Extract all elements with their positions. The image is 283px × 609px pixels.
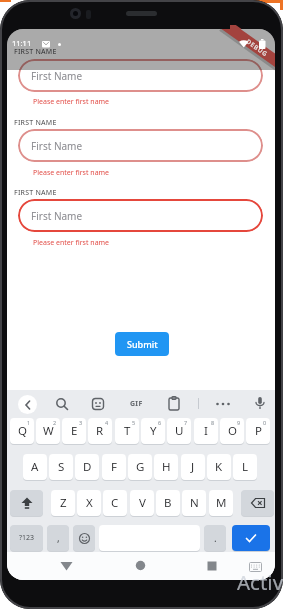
button[interactable] <box>254 396 266 411</box>
staticText: Please enter first name <box>33 97 110 107</box>
staticText: 6 <box>158 419 162 426</box>
staticText: L <box>242 459 249 475</box>
staticText: 0 <box>263 419 267 426</box>
staticText: R <box>96 423 104 439</box>
button[interactable]: Submit <box>115 332 169 356</box>
button[interactable] <box>73 525 95 551</box>
button[interactable]: L <box>233 454 257 480</box>
button[interactable]: I <box>194 418 218 444</box>
button[interactable] <box>207 561 217 571</box>
button[interactable]: E <box>62 418 86 444</box>
button[interactable]: Y <box>141 418 165 444</box>
button[interactable]: S <box>49 454 73 480</box>
staticText: K <box>215 459 223 475</box>
staticText: 4 <box>105 419 109 426</box>
button[interactable]: D <box>75 454 99 480</box>
staticText: I <box>204 423 208 439</box>
button[interactable]: N <box>182 490 206 516</box>
staticText: 5 <box>132 419 136 426</box>
button[interactable] <box>215 402 231 406</box>
staticText: Please enter first name <box>33 168 110 178</box>
staticText: Z <box>60 495 67 511</box>
staticText: Q <box>18 423 27 439</box>
button[interactable]: A <box>23 454 47 480</box>
button[interactable]: , <box>47 525 69 551</box>
button[interactable]: H <box>154 454 178 480</box>
staticText: . <box>214 531 217 545</box>
button[interactable] <box>91 397 105 411</box>
button[interactable]: F <box>102 454 126 480</box>
staticText: A <box>31 459 39 475</box>
staticText: First Name <box>31 69 83 83</box>
staticText: P <box>255 423 262 439</box>
button[interactable] <box>55 397 69 411</box>
button[interactable] <box>167 396 181 411</box>
button[interactable] <box>18 395 37 414</box>
button[interactable]: . <box>204 525 226 551</box>
staticText: Activ <box>237 568 283 596</box>
button[interactable] <box>249 562 262 573</box>
button[interactable]: J <box>181 454 205 480</box>
staticText: FIRST NAME <box>14 118 57 128</box>
button[interactable]: G <box>128 454 152 480</box>
staticText: H <box>162 459 171 475</box>
staticText: S <box>58 459 65 475</box>
button[interactable]: O <box>220 418 244 444</box>
button[interactable]: B <box>156 490 180 516</box>
button[interactable]: C <box>103 490 127 516</box>
button[interactable]: First Name <box>18 59 263 92</box>
staticText: DEBUG <box>245 38 270 59</box>
staticText: C <box>111 495 119 511</box>
staticText: 1 <box>27 419 31 426</box>
button[interactable]: ?123 <box>10 525 43 551</box>
staticText: FIRST NAME <box>14 188 57 198</box>
staticText: X <box>86 495 93 511</box>
button[interactable]: Q <box>10 418 34 444</box>
staticText: B <box>164 495 172 511</box>
staticText: N <box>190 495 199 511</box>
staticText: 7 <box>184 419 188 426</box>
staticText: Please enter first name <box>33 238 110 248</box>
staticText: First Name <box>31 209 83 223</box>
button[interactable]: T <box>115 418 139 444</box>
button[interactable]: First Name <box>18 129 263 162</box>
staticText: E <box>71 423 78 439</box>
button[interactable]: V <box>130 490 154 516</box>
staticText: W <box>43 423 54 439</box>
staticText: FIRST NAME <box>14 47 57 57</box>
staticText: F <box>111 459 117 475</box>
staticText: First Name <box>31 139 83 153</box>
staticText: 8 <box>211 419 215 426</box>
staticText: G <box>136 459 145 475</box>
staticText: Submit <box>127 338 158 350</box>
button[interactable]: K <box>207 454 231 480</box>
button[interactable]: GIF <box>127 397 145 411</box>
staticText: ?123 <box>19 533 35 543</box>
button[interactable] <box>241 490 274 516</box>
button[interactable]: M <box>209 490 233 516</box>
button[interactable] <box>232 525 270 551</box>
button[interactable] <box>60 561 73 571</box>
staticText: 3 <box>79 419 83 426</box>
button[interactable]: Z <box>51 490 75 516</box>
staticText: M <box>216 495 227 511</box>
staticText: , <box>57 531 60 545</box>
button[interactable]: U <box>167 418 191 444</box>
button[interactable] <box>10 490 43 516</box>
staticText: D <box>83 459 92 475</box>
button[interactable]: W <box>36 418 60 444</box>
staticText: 2 <box>53 419 57 426</box>
button[interactable]: X <box>77 490 101 516</box>
staticText: 11:11 <box>12 38 32 48</box>
staticText: O <box>228 423 237 439</box>
staticText: T <box>124 423 131 439</box>
staticText: J <box>191 459 195 475</box>
button[interactable]: P <box>246 418 270 444</box>
staticText: Y <box>150 423 157 439</box>
staticText: U <box>175 423 184 439</box>
button[interactable]: First Name <box>18 199 263 232</box>
button[interactable] <box>135 560 146 571</box>
button[interactable]: R <box>88 418 112 444</box>
staticText: 9 <box>237 419 241 426</box>
